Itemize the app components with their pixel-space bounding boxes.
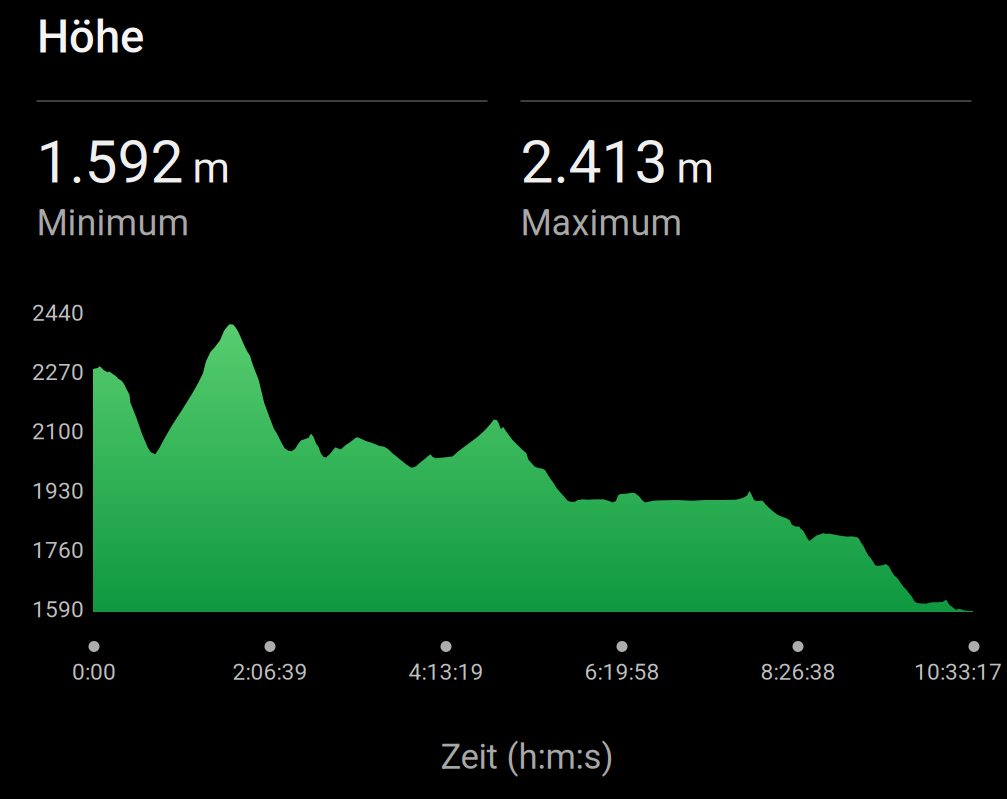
staticText: 2100	[32, 418, 84, 445]
staticText: Höhe	[37, 10, 144, 63]
staticText: Zeit (h:m:s)	[440, 737, 613, 777]
staticText: 2270	[32, 359, 84, 386]
staticText: 2:06:39	[232, 659, 307, 685]
staticText: Minimum	[36, 202, 189, 244]
staticText: 1760	[32, 537, 84, 563]
staticText: 8:26:38	[760, 659, 835, 685]
staticText: 1930	[32, 478, 84, 504]
staticText: 1590	[32, 596, 84, 623]
staticText: Maximum	[520, 202, 682, 244]
staticText: 2.413	[520, 128, 667, 197]
staticText: 0:00	[72, 659, 116, 685]
button[interactable]: 2.413	[520, 100, 971, 248]
button[interactable]: 1.592	[36, 100, 487, 248]
staticText: 10:33:17	[914, 659, 1002, 685]
staticText: 1.592	[36, 128, 183, 197]
staticText: 4:13:19	[408, 659, 483, 685]
staticText: 6:19:58	[584, 659, 659, 685]
staticText: 2440	[32, 300, 84, 326]
staticText: m	[676, 143, 713, 193]
staticText: m	[192, 143, 229, 193]
